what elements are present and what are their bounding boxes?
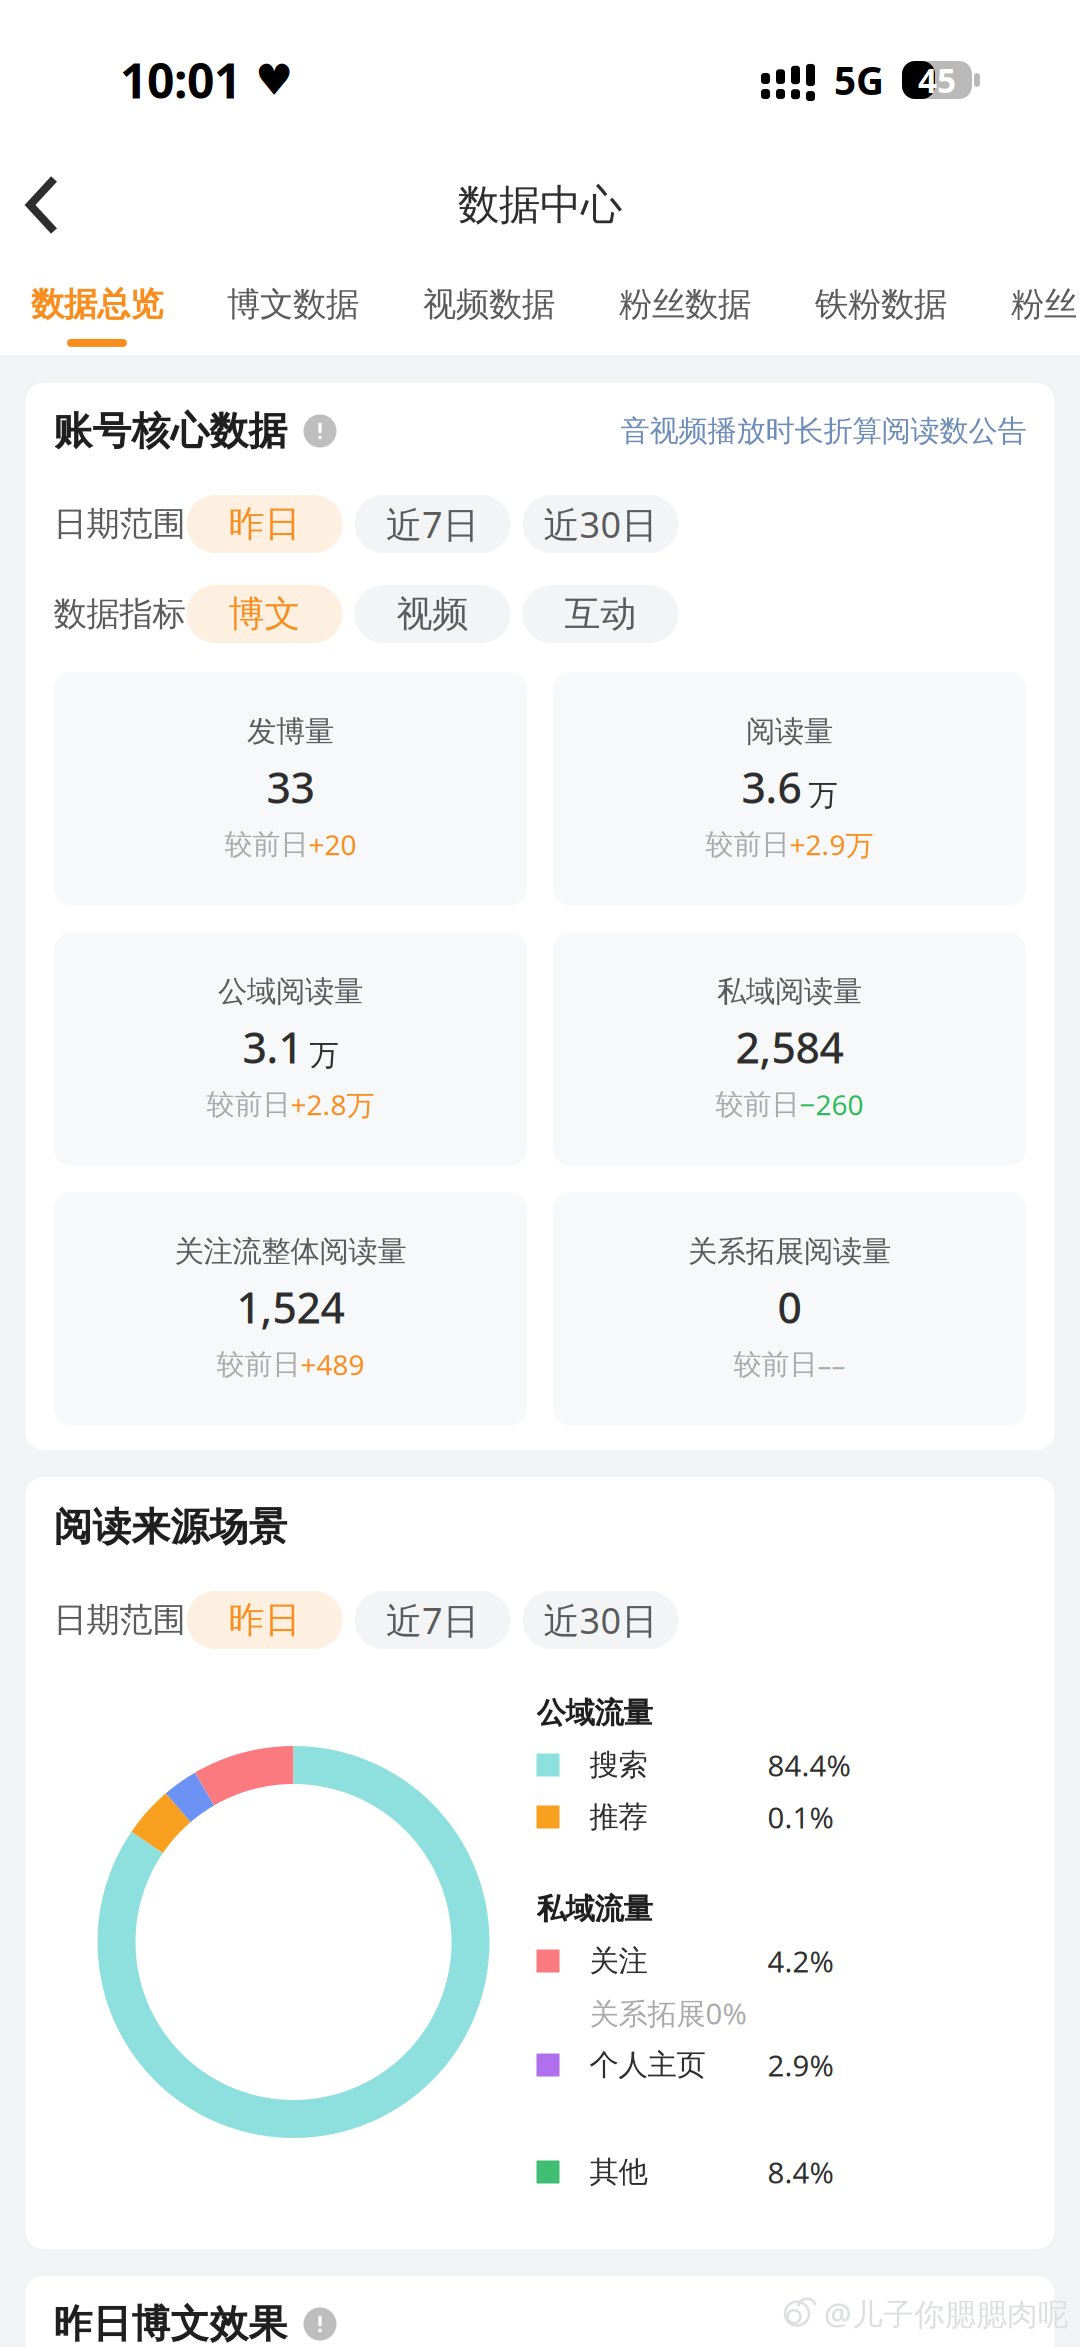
staticText: 近30日 [543, 1596, 657, 1644]
staticText: 私域流量 [536, 1891, 652, 1927]
staticText: 0.1% [767, 1797, 833, 1836]
staticText: 1,524 [236, 1279, 344, 1335]
staticText: 昨日 [228, 1598, 300, 1642]
staticText: 公域流量 [536, 1695, 652, 1731]
button[interactable]: Back [14, 167, 90, 243]
staticText: +20 [308, 826, 356, 863]
staticText: 较前日 [206, 1087, 290, 1122]
staticText: 博文 [228, 592, 300, 636]
staticText: 关注 [589, 1943, 647, 1979]
staticText: 日期范围 [53, 1599, 185, 1640]
staticText: 数据中心 [458, 180, 622, 230]
staticText: 8.4% [767, 2152, 833, 2191]
staticText: 视频 [396, 592, 468, 636]
staticText: +2.8万 [290, 1086, 374, 1123]
button[interactable]: 博文数据 [227, 280, 359, 355]
button[interactable]: 近30日 [522, 495, 678, 553]
staticText: 数据总览 [31, 284, 163, 325]
staticText: 互动 [564, 592, 636, 636]
staticText: 3.1 [242, 1019, 302, 1075]
staticText: 日期范围 [53, 503, 185, 544]
staticText: 2,584 [735, 1019, 843, 1075]
staticText: 昨日博文效果 [53, 2300, 287, 2347]
staticText: ♥ [255, 56, 293, 104]
staticText: 10:01 [120, 48, 241, 112]
staticText: 关注流整体阅读量 [174, 1233, 406, 1269]
staticText: 关系拓展0% [589, 1993, 746, 2032]
staticText: 较前日 [705, 827, 789, 862]
button[interactable]: 视频数据 [423, 280, 555, 355]
staticText: 3.6 [741, 759, 801, 815]
button[interactable]: 粉丝 [1011, 280, 1077, 355]
button[interactable]: 昨日 [186, 1591, 342, 1649]
staticText: +2.9万 [789, 826, 873, 863]
staticText: 搜索 [589, 1747, 647, 1783]
staticText: 较前日 [715, 1087, 799, 1122]
staticText: 万 [808, 777, 837, 813]
staticText: 公域阅读量 [218, 973, 363, 1009]
staticText: 视频数据 [423, 284, 555, 325]
staticText: 阅读来源场景 [53, 1503, 287, 1551]
staticText: −260 [799, 1086, 863, 1123]
staticText: 近7日 [386, 500, 479, 548]
staticText: 博文数据 [227, 284, 359, 325]
staticText: +489 [300, 1346, 364, 1383]
button[interactable]: 互动 [522, 585, 678, 643]
staticText: 数据指标 [53, 593, 185, 634]
staticText: 关系拓展阅读量 [688, 1233, 891, 1269]
button[interactable]: 近7日 [354, 495, 510, 553]
staticText: 4.2% [767, 1941, 833, 1980]
staticText: 发博量 [247, 713, 334, 749]
button[interactable]: 粉丝数据 [619, 280, 751, 355]
staticText: 万 [309, 1037, 338, 1073]
button[interactable]: 近30日 [522, 1591, 678, 1649]
staticText: 较前日 [733, 1347, 817, 1382]
staticText: 45 [918, 58, 956, 102]
staticText: 昨日 [228, 502, 300, 546]
button[interactable]: 视频 [354, 585, 510, 643]
staticText: 阅读量 [746, 713, 833, 749]
staticText: 近7日 [386, 1596, 479, 1644]
staticText: 84.4% [767, 1745, 850, 1784]
button[interactable]: 音视频播放时长折算阅读数公告 [620, 413, 1026, 449]
staticText: 2.9% [767, 2045, 833, 2084]
staticText: –– [817, 1346, 845, 1383]
staticText: 0 [777, 1279, 801, 1335]
staticText: 近30日 [543, 500, 657, 548]
button[interactable]: 数据总览 [31, 280, 163, 355]
staticText: 私域阅读量 [717, 973, 862, 1009]
button[interactable]: 昨日 [186, 495, 342, 553]
staticText: 5G [834, 54, 884, 106]
staticText: 粉丝 [1011, 284, 1077, 325]
staticText: 音视频播放时长折算阅读数公告 [620, 413, 1026, 449]
staticText: @儿子你腮腮肉呢 [824, 2293, 1069, 2334]
staticText: 个人主页 [589, 2047, 705, 2083]
staticText: 其他 [589, 2154, 647, 2190]
staticText: 33 [266, 759, 314, 815]
staticText: 账号核心数据 [53, 407, 287, 455]
staticText: 铁粉数据 [815, 284, 947, 325]
staticText: 推荐 [589, 1799, 647, 1835]
button[interactable]: 铁粉数据 [815, 280, 947, 355]
button[interactable]: 近7日 [354, 1591, 510, 1649]
staticText: 较前日 [224, 827, 308, 862]
button[interactable]: 博文 [186, 585, 342, 643]
staticText: 粉丝数据 [619, 284, 751, 325]
staticText: 较前日 [216, 1347, 300, 1382]
